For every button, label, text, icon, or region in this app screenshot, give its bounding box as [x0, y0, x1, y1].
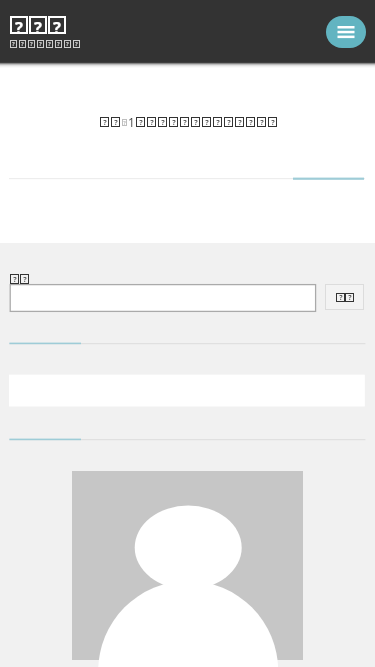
staticText: ? [139, 117, 143, 127]
staticText: ? [271, 117, 275, 127]
staticText: ? [216, 117, 220, 127]
button[interactable]: Open navigation menu [326, 16, 366, 48]
staticText: ? [249, 117, 253, 127]
staticText: ? [66, 40, 69, 48]
button[interactable]: ? [10, 16, 80, 48]
staticText: ? [103, 117, 107, 127]
staticText: ? [57, 40, 60, 48]
staticText: ? [114, 117, 118, 127]
staticText: 1 [128, 114, 135, 130]
staticText: ? [150, 117, 154, 127]
staticText: ? [260, 117, 264, 127]
staticText: ? [161, 117, 165, 127]
staticText: ? [205, 117, 209, 127]
staticText: ? [194, 117, 198, 127]
staticText: ? [75, 40, 78, 48]
staticText: ? [30, 40, 33, 48]
staticText: ? [34, 16, 42, 34]
button[interactable]: ? [325, 284, 364, 310]
staticText: ? [12, 40, 15, 48]
staticText: ? [15, 16, 23, 34]
staticText: ? [53, 16, 61, 34]
staticText: ? [23, 274, 27, 284]
staticText: ? [48, 40, 51, 48]
staticText: ? [172, 117, 176, 127]
staticText: ? [227, 117, 231, 127]
staticText: ? [13, 274, 17, 284]
staticText: ? [348, 293, 352, 302]
staticText: ? [21, 40, 24, 48]
staticText: ? [183, 117, 187, 127]
staticText: ? [339, 293, 343, 302]
staticText: ? [123, 119, 126, 126]
staticText: ? [39, 40, 42, 48]
staticText: ? [238, 117, 242, 127]
